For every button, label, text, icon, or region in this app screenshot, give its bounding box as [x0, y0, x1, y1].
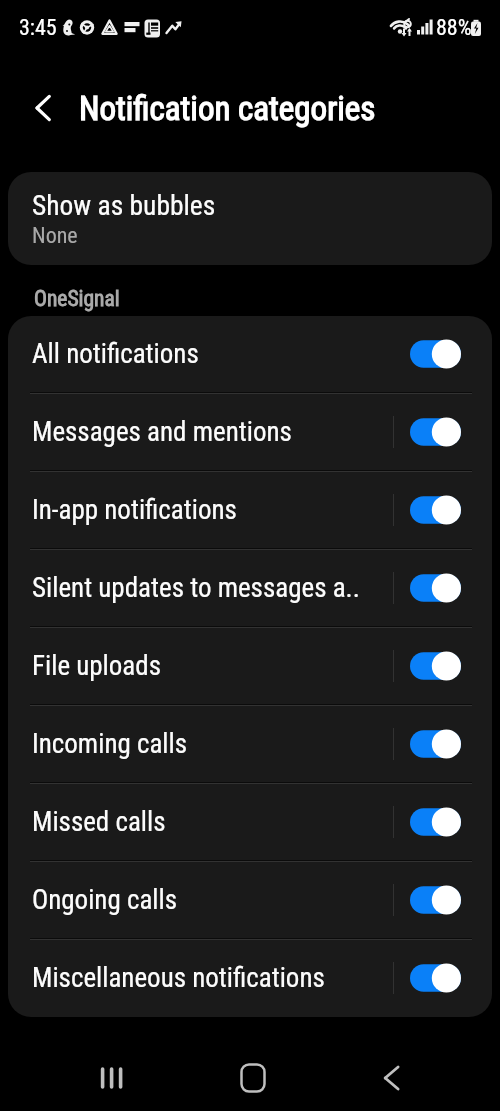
button[interactable]: Toggle Miscellaneous notifications — [410, 962, 461, 994]
button[interactable]: Home — [218, 1048, 286, 1108]
staticText: Messages and mentions — [32, 416, 393, 448]
button[interactable]: File uploads — [8, 628, 492, 704]
button[interactable]: Toggle All notifications — [410, 338, 461, 370]
staticText: Notification categories — [79, 89, 376, 128]
staticText: Missed calls — [32, 806, 393, 838]
button[interactable]: Toggle Messages and mentions — [410, 416, 461, 448]
button[interactable]: Messages and mentions — [8, 394, 492, 470]
button[interactable]: Miscellaneous notifications — [8, 940, 492, 1016]
staticText: 88% — [436, 15, 472, 41]
staticText: Miscellaneous notifications — [32, 962, 393, 994]
button[interactable]: All notifications — [8, 316, 492, 392]
button[interactable]: Toggle File uploads — [410, 650, 461, 682]
staticText: None — [32, 223, 78, 249]
button[interactable]: Show as bubbles — [8, 172, 492, 265]
staticText: Ongoing calls — [32, 884, 393, 916]
button[interactable]: Silent updates to messages a.. — [8, 550, 492, 626]
button[interactable]: Ongoing calls — [8, 862, 492, 938]
staticText: In-app notifications — [32, 494, 393, 526]
button[interactable]: Toggle In-app notifications — [410, 494, 461, 526]
button[interactable]: Toggle Silent updates to messages a.. — [410, 572, 461, 604]
button[interactable]: Recent apps — [78, 1048, 146, 1108]
staticText: OneSignal — [34, 286, 120, 311]
staticText: All notifications — [32, 338, 393, 370]
staticText: Show as bubbles — [32, 189, 216, 221]
button[interactable]: In-app notifications — [8, 472, 492, 548]
button[interactable]: Toggle Incoming calls — [410, 728, 461, 760]
staticText: 3:45 — [19, 15, 57, 41]
button[interactable]: Back — [358, 1048, 426, 1108]
staticText: Incoming calls — [32, 728, 393, 760]
staticText: Silent updates to messages a.. — [32, 572, 393, 604]
button[interactable]: Back — [20, 88, 60, 128]
staticText: File uploads — [32, 650, 393, 682]
button[interactable]: Toggle Ongoing calls — [410, 884, 461, 916]
button[interactable]: Toggle Missed calls — [410, 806, 461, 838]
button[interactable]: Incoming calls — [8, 706, 492, 782]
button[interactable]: Missed calls — [8, 784, 492, 860]
